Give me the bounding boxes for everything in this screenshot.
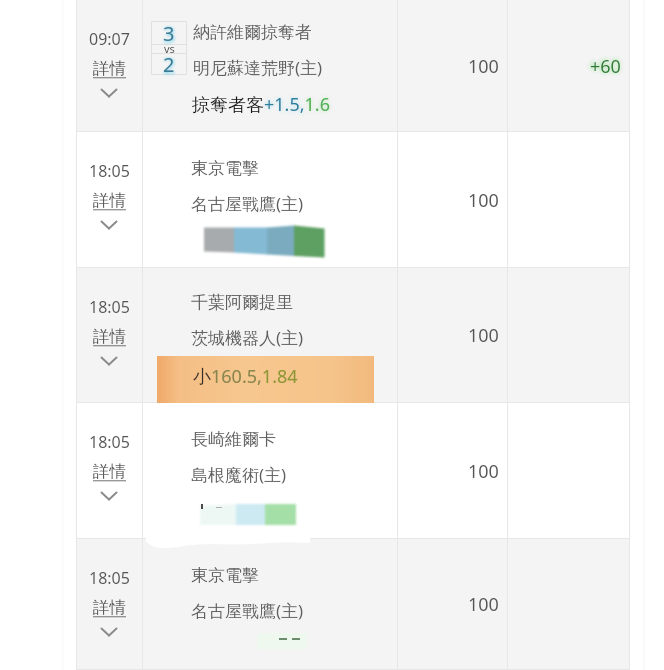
staticText: 詳情 xyxy=(93,326,126,347)
staticText: +60 xyxy=(590,54,621,79)
staticText: 3 xyxy=(163,19,176,47)
button[interactable]: Expand match details xyxy=(96,86,122,100)
staticText: 掠奪者客+1.5,1.6 xyxy=(192,92,330,117)
staticText: 小160.5,1.84 xyxy=(193,364,298,389)
staticText: 千葉阿爾提里 xyxy=(191,292,293,313)
button[interactable]: +60 xyxy=(507,0,629,132)
button[interactable]: 詳情 xyxy=(93,326,126,347)
staticText: +60 xyxy=(588,53,621,79)
button[interactable]: 小160.5,1.84 xyxy=(157,356,374,403)
button[interactable]: 詳情 xyxy=(93,597,126,618)
staticText: 詳情 xyxy=(93,190,126,211)
staticText: 名古屋戰鷹(主) xyxy=(191,192,304,215)
staticText: 18:05 xyxy=(89,296,130,318)
staticText: 島根魔術(主) xyxy=(191,463,287,486)
staticText: 明尼蘇達荒野(主) xyxy=(193,56,323,79)
staticText: 3 xyxy=(163,20,175,47)
button[interactable]: 詳情 xyxy=(93,461,126,482)
staticText: 100 xyxy=(468,592,499,617)
button[interactable]: Expand match details xyxy=(96,489,122,503)
staticText: 2 xyxy=(163,51,175,78)
button[interactable]: 東京電擊 xyxy=(142,539,397,670)
button[interactable]: 詳情 xyxy=(93,58,126,79)
button[interactable]: 長崎維爾卡 xyxy=(142,403,397,539)
button[interactable]: Expand match details xyxy=(96,354,122,368)
button[interactable]: 掠奪者客+1.5,1.6 xyxy=(192,92,330,117)
staticText: 名古屋戰鷹(主) xyxy=(191,599,304,622)
staticText: 09:07 xyxy=(89,28,130,50)
button[interactable]: 100 xyxy=(397,268,507,403)
staticText: 100 xyxy=(468,323,499,348)
staticText: 100 xyxy=(468,188,499,213)
staticText: 18:05 xyxy=(89,160,130,182)
staticText: 茨城機器人(主) xyxy=(191,326,304,349)
staticText: 納許維爾掠奪者 xyxy=(193,22,312,43)
staticText: 詳情 xyxy=(93,461,126,482)
staticText: 掠奪者客+1.5,1.6 xyxy=(192,92,330,117)
staticText: 詳情 xyxy=(93,597,126,618)
button[interactable]: 詳情 xyxy=(93,190,126,211)
button[interactable]: 100 xyxy=(397,539,507,670)
button[interactable]: Expand match details xyxy=(96,625,122,639)
button[interactable]: 3 xyxy=(142,0,397,132)
button[interactable]: 100 xyxy=(397,0,507,132)
staticText: 100 xyxy=(468,459,499,484)
staticText: 18:05 xyxy=(89,567,130,589)
button[interactable]: 100 xyxy=(397,403,507,539)
staticText: 長崎維爾卡 xyxy=(191,429,276,450)
staticText: 2 xyxy=(163,50,176,78)
button[interactable]: 東京電擊 xyxy=(142,132,397,268)
button[interactable]: Expand match details xyxy=(96,218,122,232)
staticText: 東京電擊 xyxy=(191,565,259,586)
staticText: 詳情 xyxy=(93,58,126,79)
staticText: 100 xyxy=(468,54,499,79)
staticText: vs xyxy=(164,41,175,56)
staticText: 18:05 xyxy=(89,431,130,453)
button[interactable]: 100 xyxy=(397,132,507,268)
staticText: 東京電擊 xyxy=(191,158,259,179)
